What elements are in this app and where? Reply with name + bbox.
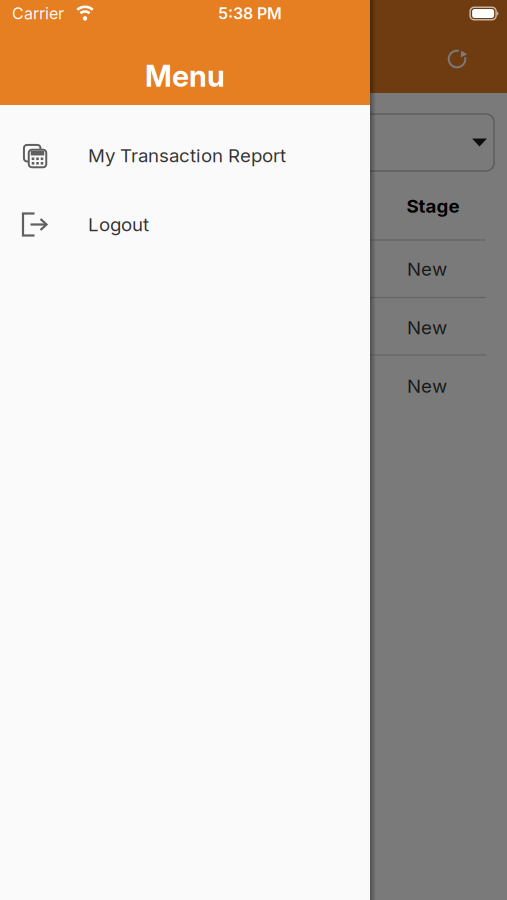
staticText: Carrier xyxy=(12,4,64,23)
staticText: New xyxy=(407,258,447,280)
staticText: New xyxy=(407,316,447,338)
button[interactable]: Refresh xyxy=(439,41,475,77)
button[interactable]: Logout xyxy=(0,190,370,259)
staticText: 5:38 PM xyxy=(218,4,282,23)
staticText: Stage xyxy=(406,195,459,217)
button[interactable]: My Transaction Report xyxy=(0,105,370,190)
staticText: Menu xyxy=(145,59,225,93)
staticText: My Transaction Report xyxy=(88,144,286,166)
staticText: New xyxy=(407,375,447,397)
staticText: Logout xyxy=(88,213,149,235)
button[interactable]: Select filter xyxy=(13,114,494,171)
